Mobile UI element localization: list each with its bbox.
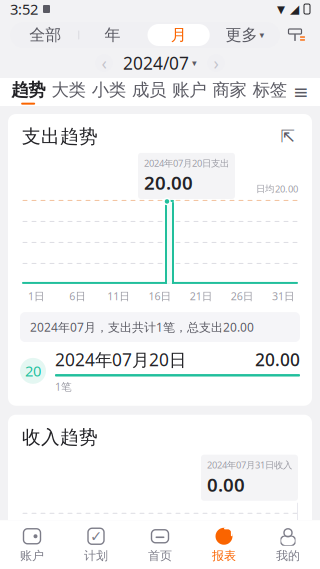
- button[interactable]: 首页: [128, 520, 192, 569]
- staticText: ‹: [101, 51, 106, 74]
- staticText: 小类: [92, 79, 126, 101]
- button[interactable]: ✓: [64, 520, 128, 569]
- button[interactable]: 账户: [169, 78, 209, 106]
- staticText: 3:52: [10, 0, 38, 19]
- button[interactable]: 标签: [250, 78, 290, 106]
- staticText: 20.00: [255, 348, 300, 371]
- button[interactable]: 账户: [0, 520, 64, 569]
- staticText: ⇱: [280, 127, 295, 146]
- button[interactable]: 趋势: [8, 78, 48, 106]
- staticText: 2024年07月，支出共计1笔，总支出20.00: [30, 319, 254, 335]
- staticText: ▾: [192, 58, 197, 68]
- button[interactable]: 小类: [89, 78, 129, 106]
- staticText: 账户: [172, 79, 206, 101]
- button[interactable]: 全屏查看: [278, 126, 298, 146]
- staticText: 商家: [213, 79, 247, 101]
- button[interactable]: 更多分类: [290, 78, 312, 106]
- staticText: 支出趋势: [22, 125, 98, 148]
- staticText: 16日: [148, 289, 171, 303]
- button[interactable]: 全部: [12, 23, 78, 47]
- staticText: 日均: [256, 183, 274, 195]
- staticText: 年: [104, 25, 120, 45]
- staticText: 1日: [28, 289, 45, 303]
- staticText: 0.00: [207, 472, 245, 497]
- staticText: 20: [25, 361, 41, 381]
- staticText: 2024/07: [123, 51, 189, 74]
- button[interactable]: 年: [79, 23, 145, 47]
- staticText: 报表: [212, 548, 236, 563]
- staticText: 11日: [107, 289, 130, 303]
- staticText: 标签: [253, 79, 287, 101]
- staticText: 趋势: [11, 79, 45, 101]
- staticText: 2024年07月31日收入: [207, 459, 292, 471]
- staticText: 6日: [69, 289, 86, 303]
- staticText: 计划: [84, 548, 108, 563]
- button[interactable]: 更多: [212, 23, 278, 47]
- staticText: ◢: [290, 2, 299, 16]
- staticText: 账户: [20, 548, 44, 563]
- staticText: ›: [213, 51, 218, 74]
- button[interactable]: 报表: [192, 520, 256, 569]
- staticText: 全部: [29, 25, 61, 45]
- staticText: ▾: [277, 0, 285, 18]
- button[interactable]: 上一月: [95, 54, 113, 72]
- staticText: 31日: [272, 289, 295, 303]
- staticText: 21日: [190, 289, 213, 303]
- button[interactable]: 大类: [48, 78, 89, 106]
- staticText: 1笔: [55, 379, 72, 394]
- staticText: 20.00: [275, 183, 298, 195]
- button[interactable]: 筛选: [280, 22, 310, 48]
- staticText: 我的: [276, 548, 300, 563]
- staticText: ≡: [293, 81, 309, 103]
- button[interactable]: 我的: [256, 520, 320, 569]
- staticText: 更多: [225, 25, 257, 45]
- button[interactable]: 2024/07: [123, 51, 197, 74]
- staticText: 成员: [132, 79, 166, 101]
- staticText: ▾: [259, 30, 264, 40]
- staticText: 月: [171, 25, 187, 45]
- staticText: 2024年07月20日: [55, 348, 186, 371]
- staticText: 2024年07月20日支出: [144, 157, 229, 169]
- button[interactable]: 下一月: [207, 54, 225, 72]
- staticText: 大类: [51, 79, 85, 101]
- staticText: ✓: [90, 528, 102, 544]
- staticText: 20.00: [144, 170, 193, 195]
- button[interactable]: 商家: [209, 78, 250, 106]
- staticText: 收入趋势: [22, 426, 98, 449]
- staticText: 26日: [231, 289, 254, 303]
- staticText: 首页: [148, 548, 172, 563]
- button[interactable]: 成员: [129, 78, 169, 106]
- button[interactable]: 月: [145, 24, 212, 46]
- button[interactable]: 20: [8, 342, 312, 406]
